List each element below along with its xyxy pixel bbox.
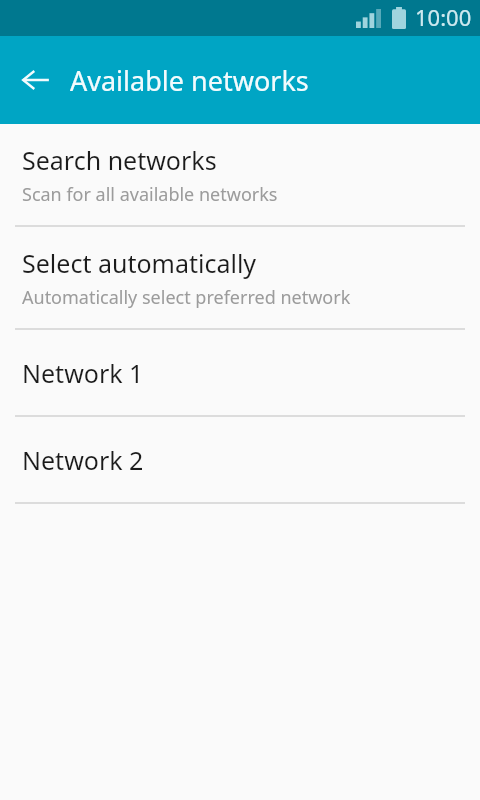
staticText: Available networks	[70, 62, 309, 99]
staticText: Network 2	[22, 443, 144, 477]
staticText: Select automatically	[22, 246, 257, 280]
button[interactable]: Search networks	[0, 124, 480, 225]
staticText: Network 1	[22, 356, 144, 390]
button[interactable]: Back	[8, 52, 64, 108]
button[interactable]: Select automatically	[0, 227, 480, 328]
staticText: Scan for all available networks	[22, 182, 278, 207]
staticText: Automatically select preferred network	[22, 285, 351, 310]
staticText: Search networks	[22, 143, 217, 177]
staticText: 10:00	[415, 2, 472, 32]
button[interactable]: Network 1	[0, 330, 480, 415]
button[interactable]: Network 2	[0, 417, 480, 502]
